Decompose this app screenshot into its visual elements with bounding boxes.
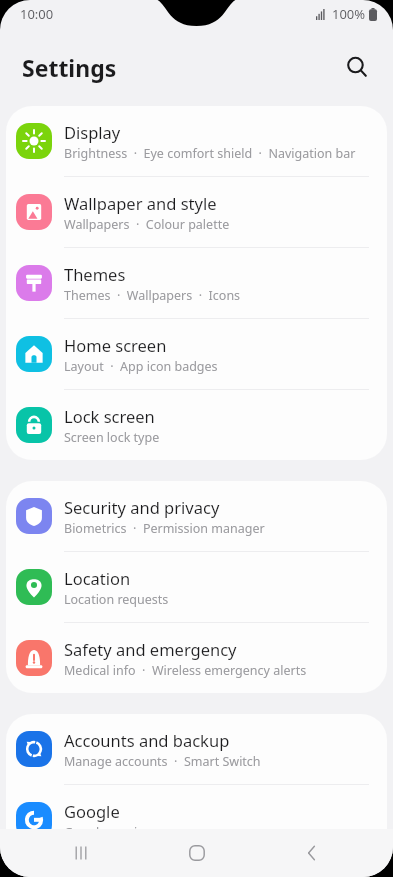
staticText: Location — [64, 567, 131, 589]
staticText: Wallpaper and style — [64, 192, 217, 214]
button[interactable]: Display — [6, 106, 387, 176]
button[interactable]: Google — [6, 785, 387, 855]
button[interactable]: Search — [333, 43, 381, 91]
button[interactable]: Security and privacy — [6, 481, 387, 551]
staticText: Manage accounts · Smart Switch — [64, 753, 261, 770]
staticText: Wallpapers · Colour palette — [64, 216, 230, 233]
button[interactable]: Location — [6, 552, 387, 622]
staticText: Medical info · Wireless emergency alerts — [64, 662, 307, 679]
staticText: 100% — [332, 5, 366, 23]
staticText: Accounts and backup — [64, 729, 230, 751]
button[interactable]: Home — [163, 829, 231, 877]
staticText: Themes — [64, 263, 126, 285]
staticText: Location requests — [64, 591, 169, 608]
button[interactable]: Lock screen — [6, 390, 387, 460]
staticText: Layout · App icon badges — [64, 358, 218, 375]
staticText: Home screen — [64, 334, 167, 356]
button[interactable]: Themes — [6, 248, 387, 318]
staticText: Settings — [22, 52, 117, 83]
staticText: Safety and emergency — [64, 638, 237, 660]
staticText: Display — [64, 121, 121, 143]
staticText: Screen lock type — [64, 429, 160, 446]
staticText: Lock screen — [64, 405, 155, 427]
button[interactable]: Back — [278, 829, 346, 877]
button[interactable]: Safety and emergency — [6, 623, 387, 693]
button[interactable]: Recent apps — [47, 829, 115, 877]
staticText: Google services — [64, 824, 157, 841]
staticText: 10:00 — [20, 5, 54, 23]
button[interactable]: Wallpaper and style — [6, 177, 387, 247]
staticText: Themes · Wallpapers · Icons — [64, 287, 241, 304]
button[interactable]: Accounts and backup — [6, 714, 387, 784]
staticText: Brightness · Eye comfort shield · Naviga… — [64, 145, 356, 162]
button[interactable]: Home screen — [6, 319, 387, 389]
staticText: Biometrics · Permission manager — [64, 520, 265, 537]
staticText: Security and privacy — [64, 496, 220, 518]
staticText: Google — [64, 800, 120, 822]
